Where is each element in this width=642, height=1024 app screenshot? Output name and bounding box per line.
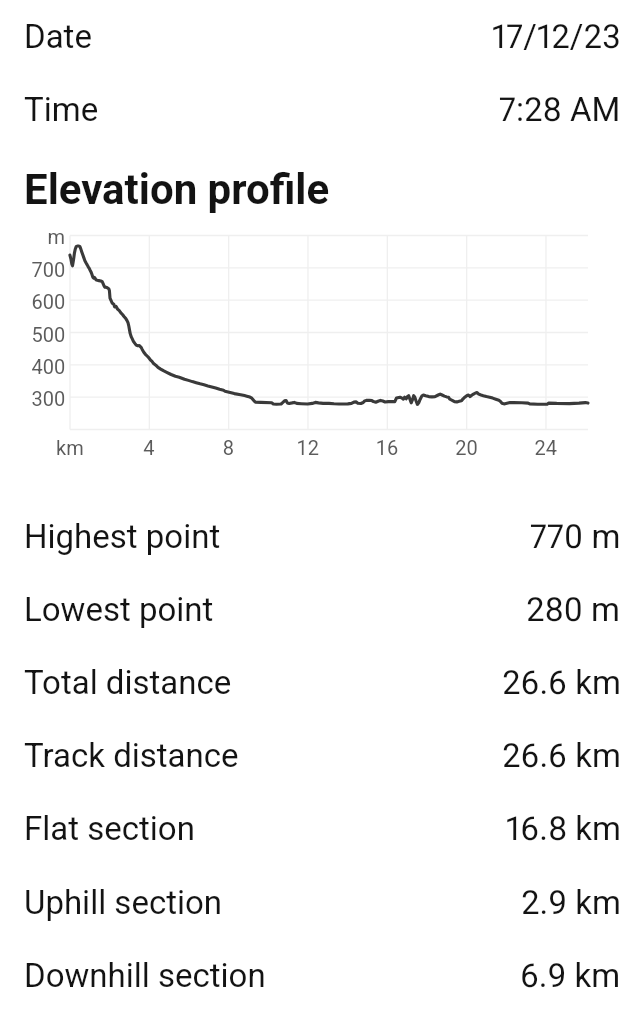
staticText: 280 m [526,590,621,629]
staticText: Uphill section [24,883,223,922]
button[interactable]: Highest point [0,500,642,573]
staticText: Elevation profile [24,165,330,214]
staticText: Highest point [24,517,221,556]
staticText: Total distance [24,663,232,702]
staticText: 2.9 km [521,883,621,922]
staticText: Time [24,90,99,129]
staticText: 770 m [530,517,621,556]
button[interactable]: Date [0,0,642,73]
button[interactable]: Downhill section [0,939,642,1012]
other: Elevation profile chart [0,0,642,1024]
staticText: Downhill section [24,956,266,995]
staticText: Date [24,17,92,56]
staticText: Lowest point [24,590,214,629]
staticText: 26.6 km [502,663,621,702]
staticText: Track distance [24,736,239,775]
button[interactable]: Total distance [0,646,642,719]
button[interactable]: Time [0,73,642,146]
staticText: 7:28 AM [499,90,621,129]
button[interactable]: Flat section [0,792,642,865]
staticText: 26.6 km [502,736,621,775]
staticText: 6.9 km [520,956,621,995]
staticText: Flat section [24,809,195,848]
button[interactable]: Uphill section [0,866,642,939]
staticText: 17/12/23 [492,17,621,56]
staticText: 16.8 km [506,809,621,848]
button[interactable]: Track distance [0,719,642,792]
button[interactable]: Lowest point [0,573,642,646]
